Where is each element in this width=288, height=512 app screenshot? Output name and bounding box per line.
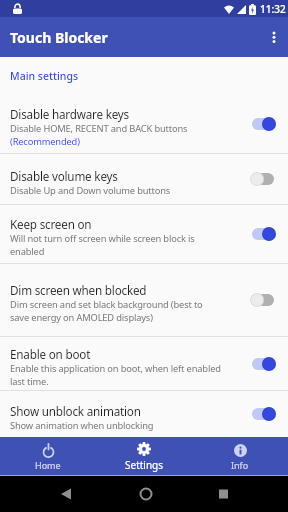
staticText: Disable volume keys [10, 168, 118, 184]
button[interactable] [272, 31, 276, 44]
button[interactable] [250, 117, 276, 131]
button[interactable]: Keep screen on [0, 205, 288, 263]
staticText: Info [231, 459, 249, 471]
staticText: Enable this application on boot, when le… [10, 362, 221, 388]
button[interactable] [250, 172, 276, 186]
button[interactable]: Info [192, 437, 288, 475]
button[interactable] [250, 227, 276, 241]
staticText: Keep screen on [10, 216, 92, 232]
button[interactable]: Disable volume keys [0, 154, 288, 204]
staticText: Dim screen when blocked [10, 282, 147, 298]
staticText: Disable HOME, RECENT and BACK buttons [10, 122, 188, 135]
staticText: Enable on boot [10, 346, 91, 362]
button[interactable] [250, 293, 276, 307]
staticText: Settings [125, 458, 164, 472]
staticText: Disable Up and Down volume buttons [10, 184, 171, 197]
staticText: (Recommended) [10, 135, 80, 148]
staticText: Touch Blocker [10, 28, 108, 47]
staticText: Dim screen and set black background (bes… [10, 298, 203, 324]
button[interactable]: Disable hardware keys [0, 95, 288, 153]
staticText: Home [35, 459, 61, 471]
staticText: Disable hardware keys [10, 106, 130, 122]
button[interactable]: Show unblock animation [0, 391, 288, 437]
button[interactable]: Settings [96, 437, 192, 475]
button[interactable] [250, 357, 276, 371]
button[interactable]: Home [0, 437, 96, 475]
staticText: Show animation when unblocking [10, 419, 154, 432]
button[interactable]: Enable on boot [0, 337, 288, 390]
staticText: Show unblock animation [10, 403, 141, 419]
button[interactable] [250, 407, 276, 421]
staticText: 11:32 [260, 2, 286, 16]
staticText: Will not turn off screen while screen bl… [10, 232, 195, 258]
staticText: Main settings [10, 69, 78, 83]
button[interactable]: Dim screen when blocked [0, 264, 288, 336]
